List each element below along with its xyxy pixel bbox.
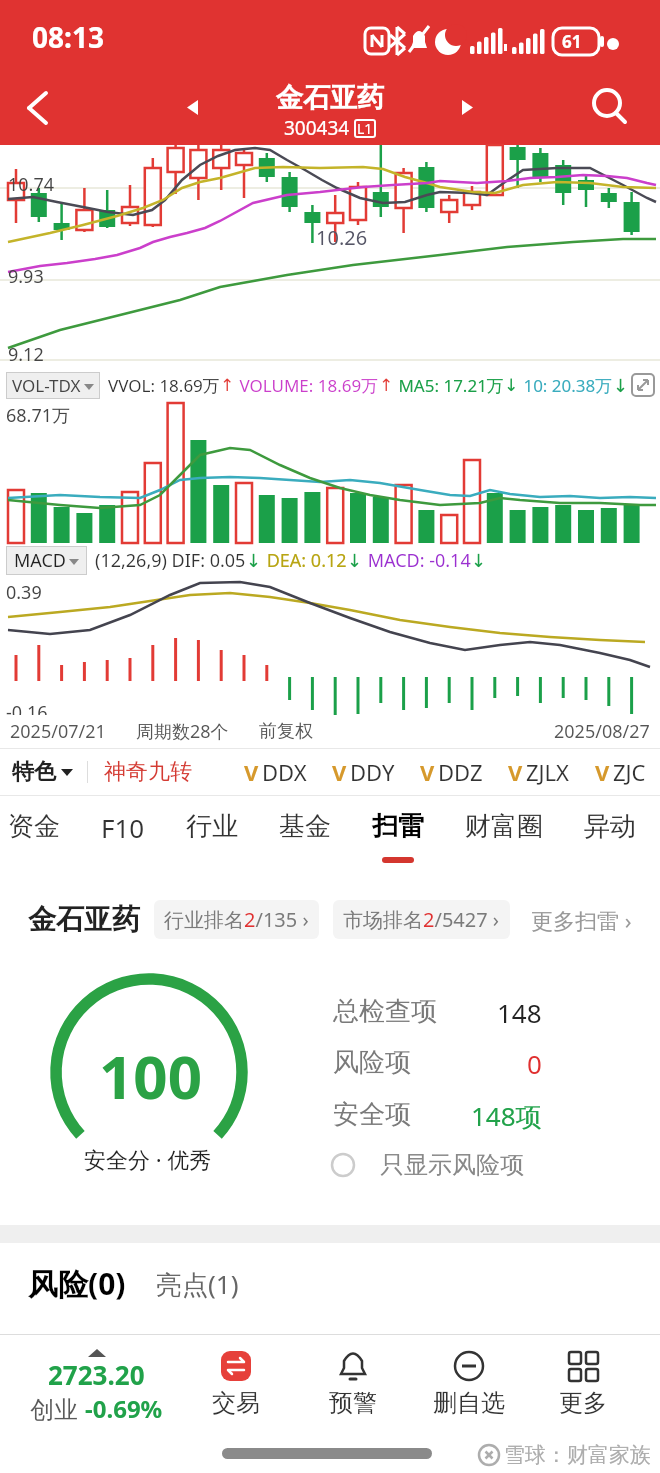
staticText: 9.12	[8, 342, 44, 367]
staticText: 金石亚药	[28, 902, 140, 937]
button[interactable]: 市场排名2/5427 ›	[333, 900, 510, 939]
button[interactable]: 预警	[313, 1350, 393, 1418]
staticText: ↓	[504, 375, 519, 395]
staticText: 2723.20	[48, 1357, 145, 1392]
staticText: 10.74	[8, 172, 55, 197]
button[interactable]: VOL-TDX	[0, 370, 660, 400]
staticText: ↓	[347, 550, 363, 571]
staticText: VOL-TDX	[12, 374, 81, 397]
staticText: 创业	[30, 1392, 85, 1425]
staticText: 金石亚药	[276, 81, 384, 115]
staticText: 前复权	[259, 720, 313, 743]
button[interactable]: 删自选	[429, 1350, 509, 1418]
staticText: 扫雷	[372, 810, 424, 843]
staticText: V	[332, 757, 347, 787]
staticText: 预警	[329, 1388, 377, 1418]
staticText: 0.39	[6, 580, 42, 605]
button[interactable]: V	[244, 757, 307, 787]
staticText: V	[244, 757, 259, 787]
staticText: 基金	[279, 810, 331, 843]
staticText: 148	[497, 995, 542, 1030]
staticText: V	[420, 757, 435, 787]
staticText: 2025/08/27	[554, 719, 650, 744]
staticText: 交易	[212, 1388, 260, 1418]
button[interactable]: 更多	[543, 1350, 623, 1418]
staticText: 2025/07/21	[10, 719, 106, 744]
staticText: 删自选	[433, 1388, 505, 1418]
staticText: 100	[99, 1035, 202, 1117]
staticText: 更多	[559, 1388, 607, 1418]
staticText: MACD	[14, 548, 66, 573]
button[interactable]: 风险(0)	[28, 1263, 126, 1304]
staticText: 300434	[284, 115, 350, 141]
staticText: VVOL: 18.69万	[108, 374, 220, 397]
staticText: 异动	[584, 810, 636, 843]
staticText: 财富圈	[465, 810, 543, 843]
button[interactable]: 异动	[584, 810, 636, 843]
staticText: V	[508, 757, 523, 787]
staticText: -0.16	[6, 700, 48, 725]
staticText: 特色	[12, 758, 56, 786]
staticText: ZJLX	[526, 757, 570, 787]
staticText: VOLUME: 18.69万	[235, 374, 379, 397]
staticText: 61	[562, 30, 582, 53]
staticText: -0.69%	[85, 1392, 163, 1425]
staticText: 总检查项	[333, 995, 437, 1028]
staticText: 资金	[8, 810, 60, 843]
staticText: DDX	[262, 757, 307, 787]
staticText: MACD: -0.14	[363, 548, 471, 573]
button[interactable]: 基金	[279, 810, 331, 843]
button[interactable]: F10	[101, 810, 145, 845]
button[interactable]: 行业排名2/135 ›	[154, 900, 319, 939]
button[interactable]: V	[595, 757, 646, 787]
staticText: 10: 20.38万	[519, 374, 613, 397]
staticText: 10.26	[316, 224, 368, 251]
button[interactable]: V	[508, 757, 570, 787]
button[interactable]: 亮点(1)	[156, 1266, 239, 1304]
button[interactable]: 只显示风险项	[330, 1150, 524, 1180]
button[interactable]: 资金	[8, 810, 60, 843]
button[interactable]: V	[420, 757, 483, 787]
staticText: F10	[101, 810, 145, 845]
button[interactable]: 交易	[196, 1350, 276, 1418]
staticText: DDY	[350, 757, 395, 787]
staticText: 0	[527, 1046, 542, 1081]
staticText: 安全分 · 优秀	[84, 1144, 212, 1174]
staticText: ↓	[246, 550, 262, 571]
staticText: 68.71万	[6, 403, 71, 428]
staticText: ZJC	[613, 757, 646, 787]
button[interactable]: 10.74	[0, 145, 660, 370]
button[interactable]: 行业	[186, 810, 238, 843]
staticText: L1	[357, 119, 373, 138]
staticText: 9.93	[8, 264, 44, 289]
staticText: 安全项	[333, 1098, 411, 1131]
staticText: 08:13	[32, 18, 104, 56]
staticText: 只显示风险项	[380, 1150, 524, 1180]
button[interactable]: 财富圈	[465, 810, 543, 843]
button[interactable]: MACD	[0, 545, 660, 575]
button[interactable]: 2723.20	[30, 1349, 163, 1425]
staticText: 周期数28个	[136, 719, 229, 744]
staticText: V	[595, 757, 610, 787]
button[interactable]: 扫雷	[372, 810, 424, 863]
staticText: 风险项	[333, 1046, 411, 1079]
staticText: 市场排名2/5427 ›	[343, 906, 500, 933]
staticText: ↓	[613, 375, 629, 396]
staticText: 148项	[471, 1098, 542, 1134]
button[interactable]: 神奇九转	[104, 758, 192, 786]
staticText: ↑	[379, 375, 394, 395]
staticText: 雪球：财富家族	[504, 1442, 651, 1468]
staticText: 行业排名2/135 ›	[164, 906, 309, 933]
button[interactable]: 更多扫雷 ›	[531, 905, 632, 935]
button[interactable]: V	[332, 757, 395, 787]
staticText: DDZ	[438, 757, 483, 787]
staticText: MA5: 17.21万	[394, 374, 504, 397]
staticText: 行业	[186, 810, 238, 843]
staticText: DEA: 0.12	[262, 548, 347, 573]
staticText: ↓	[471, 550, 487, 571]
staticText: (12,26,9) DIF: 0.05	[95, 548, 246, 573]
staticText: ↑	[220, 375, 235, 395]
button[interactable]: 特色	[12, 758, 73, 786]
